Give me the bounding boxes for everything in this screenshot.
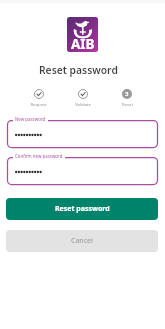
button[interactable]: 3 xyxy=(105,89,149,108)
staticText: 3 xyxy=(125,90,129,98)
staticText: Confirm new password xyxy=(15,153,63,159)
button[interactable]: Reset password xyxy=(6,198,158,220)
button[interactable]: Cancel xyxy=(6,230,158,252)
staticText: Reset password xyxy=(39,63,118,77)
staticText: Cancel xyxy=(71,236,93,246)
staticText: Validate xyxy=(75,102,91,108)
staticText: New password xyxy=(15,116,46,122)
button[interactable]: Validate xyxy=(61,89,105,108)
staticText: Request xyxy=(30,102,47,108)
staticText: Reset xyxy=(122,102,133,108)
staticText: AIB xyxy=(71,35,95,52)
button[interactable]: Request xyxy=(16,89,61,108)
staticText: Reset password xyxy=(55,204,110,214)
